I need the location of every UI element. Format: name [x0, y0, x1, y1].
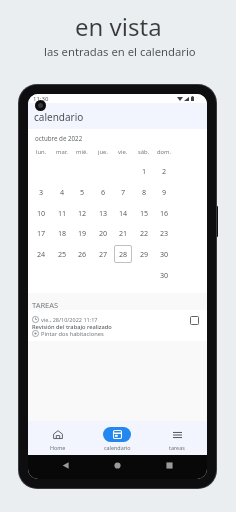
staticText: 4	[60, 187, 65, 197]
staticText: 20	[99, 228, 108, 238]
staticText: calendario	[34, 110, 84, 124]
staticText: 22	[140, 228, 149, 238]
staticText: 16	[160, 208, 169, 218]
staticText: 1	[142, 166, 147, 176]
staticText: 30	[160, 249, 169, 259]
staticText: 18	[58, 228, 67, 238]
staticText: 9	[162, 187, 167, 197]
staticText: 30	[160, 270, 169, 280]
staticText: 19	[78, 228, 87, 238]
button[interactable]: Atrás	[62, 462, 69, 469]
button[interactable]: calendario	[87, 421, 147, 455]
staticText: 26	[78, 249, 87, 259]
staticText: dom.	[157, 148, 172, 155]
button[interactable]: vie., 28/10/2022 11:17	[28, 310, 207, 341]
staticText: en vista	[75, 10, 162, 42]
staticText: Home	[50, 444, 66, 451]
staticText: 24	[37, 249, 46, 259]
staticText: 11	[58, 208, 67, 218]
staticText: octubre de 2022	[35, 134, 83, 142]
button[interactable]: Marcar tarea completada	[190, 316, 199, 325]
staticText: 7	[121, 187, 126, 197]
staticText: 12	[78, 208, 87, 218]
staticText: 5	[80, 187, 85, 197]
button[interactable]: Home	[28, 421, 87, 455]
staticText: 13	[99, 208, 108, 218]
staticText: 21	[119, 228, 128, 238]
staticText: las entradas en el calendario	[44, 44, 196, 56]
staticText: 28	[119, 249, 128, 259]
staticText: 11:30	[33, 95, 49, 103]
staticText: vie., 28/10/2022 11:17	[41, 316, 98, 323]
staticText: TAREAS	[32, 300, 59, 310]
staticText: 29	[140, 249, 149, 259]
staticText: 6	[101, 187, 106, 197]
staticText: 3	[39, 187, 44, 197]
staticText: Revisión del trabajo realizado	[32, 323, 112, 330]
staticText: sáb.	[138, 148, 150, 155]
staticText: 27	[99, 249, 108, 259]
staticText: Pintar dos habitaciones	[41, 330, 104, 337]
button[interactable]: Recientes	[166, 462, 173, 469]
staticText: 10	[37, 208, 46, 218]
staticText: jue.	[98, 148, 108, 155]
button[interactable]: Inicio	[114, 462, 121, 469]
staticText: calendario	[104, 444, 131, 451]
staticText: mar.	[56, 148, 68, 155]
staticText: 23	[160, 228, 169, 238]
staticText: tareas	[169, 444, 185, 451]
staticText: lun.	[36, 148, 47, 155]
staticText: 17	[37, 228, 46, 238]
staticText: vie.	[118, 148, 128, 155]
staticText: 14	[119, 208, 128, 218]
staticText: 15	[140, 208, 149, 218]
staticText: 2	[162, 166, 167, 176]
staticText: mié.	[76, 148, 88, 155]
staticText: 25	[58, 249, 67, 259]
staticText: 8	[142, 187, 147, 197]
button[interactable]: tareas	[147, 421, 207, 455]
